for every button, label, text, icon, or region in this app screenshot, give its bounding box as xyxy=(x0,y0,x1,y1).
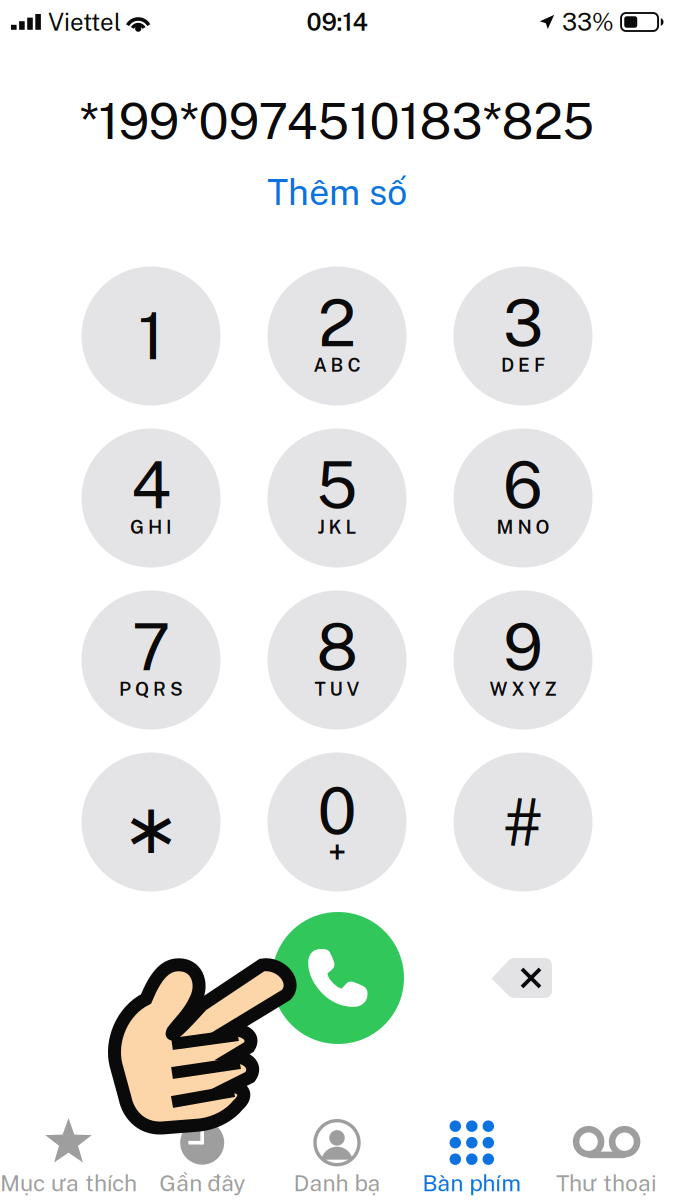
button[interactable]: 1 xyxy=(81,266,220,405)
button[interactable]: Bàn phím xyxy=(404,1118,539,1196)
staticText: 3 xyxy=(503,285,543,361)
staticText: T U V xyxy=(314,678,359,700)
staticText: P Q R S xyxy=(119,678,183,700)
staticText: 8 xyxy=(316,609,357,685)
button[interactable]: 4 xyxy=(81,428,220,567)
button[interactable]: 9 xyxy=(453,590,592,729)
staticText: M N O xyxy=(496,516,549,538)
button[interactable]: Mục ưa thích xyxy=(0,1118,135,1196)
staticText: 4 xyxy=(131,447,171,523)
button[interactable]: 8 xyxy=(267,590,406,729)
button[interactable]: # xyxy=(453,752,592,891)
button[interactable]: Call xyxy=(268,912,407,1044)
staticText: 09:14 xyxy=(306,8,367,36)
staticText: G H I xyxy=(130,516,172,538)
button[interactable]: ∗ xyxy=(81,752,220,891)
staticText: + xyxy=(328,833,346,871)
staticText: 6 xyxy=(503,447,543,523)
button[interactable]: Thêm số xyxy=(251,163,423,221)
staticText: J K L xyxy=(317,516,356,538)
staticText: 9 xyxy=(503,609,543,685)
staticText: Gần đây xyxy=(159,1170,245,1196)
staticText: Mục ưa thích xyxy=(0,1170,137,1196)
button[interactable]: 6 xyxy=(453,428,592,567)
button[interactable]: Gần đây xyxy=(135,1118,270,1196)
button[interactable]: 2 xyxy=(267,266,406,405)
staticText: ∗ xyxy=(122,789,180,869)
staticText: 1 xyxy=(138,298,164,374)
staticText: A B C xyxy=(313,354,360,376)
button[interactable]: 0 xyxy=(267,752,406,891)
staticText: Thêm số xyxy=(267,171,407,213)
staticText: 7 xyxy=(132,609,170,685)
staticText: Thư thoại xyxy=(556,1170,657,1196)
staticText: Danh bạ xyxy=(293,1170,380,1196)
staticText: 2 xyxy=(318,285,356,361)
button[interactable]: 7 xyxy=(81,590,220,729)
staticText: # xyxy=(503,783,543,861)
staticText: 5 xyxy=(316,447,357,523)
button[interactable]: 3 xyxy=(453,266,592,405)
staticText: 33% xyxy=(562,8,614,36)
button[interactable]: 5 xyxy=(267,428,406,567)
staticText: W X Y Z xyxy=(489,678,556,700)
staticText: *199*0974510183*825 xyxy=(79,92,594,150)
staticText: D E F xyxy=(501,354,545,376)
button[interactable]: Delete xyxy=(452,912,591,1044)
staticText: 0 xyxy=(317,773,356,849)
button[interactable]: Thư thoại xyxy=(539,1118,674,1196)
staticText: Viettel xyxy=(48,8,121,36)
staticText: Bàn phím xyxy=(422,1170,521,1196)
button[interactable]: Danh bạ xyxy=(270,1118,404,1196)
